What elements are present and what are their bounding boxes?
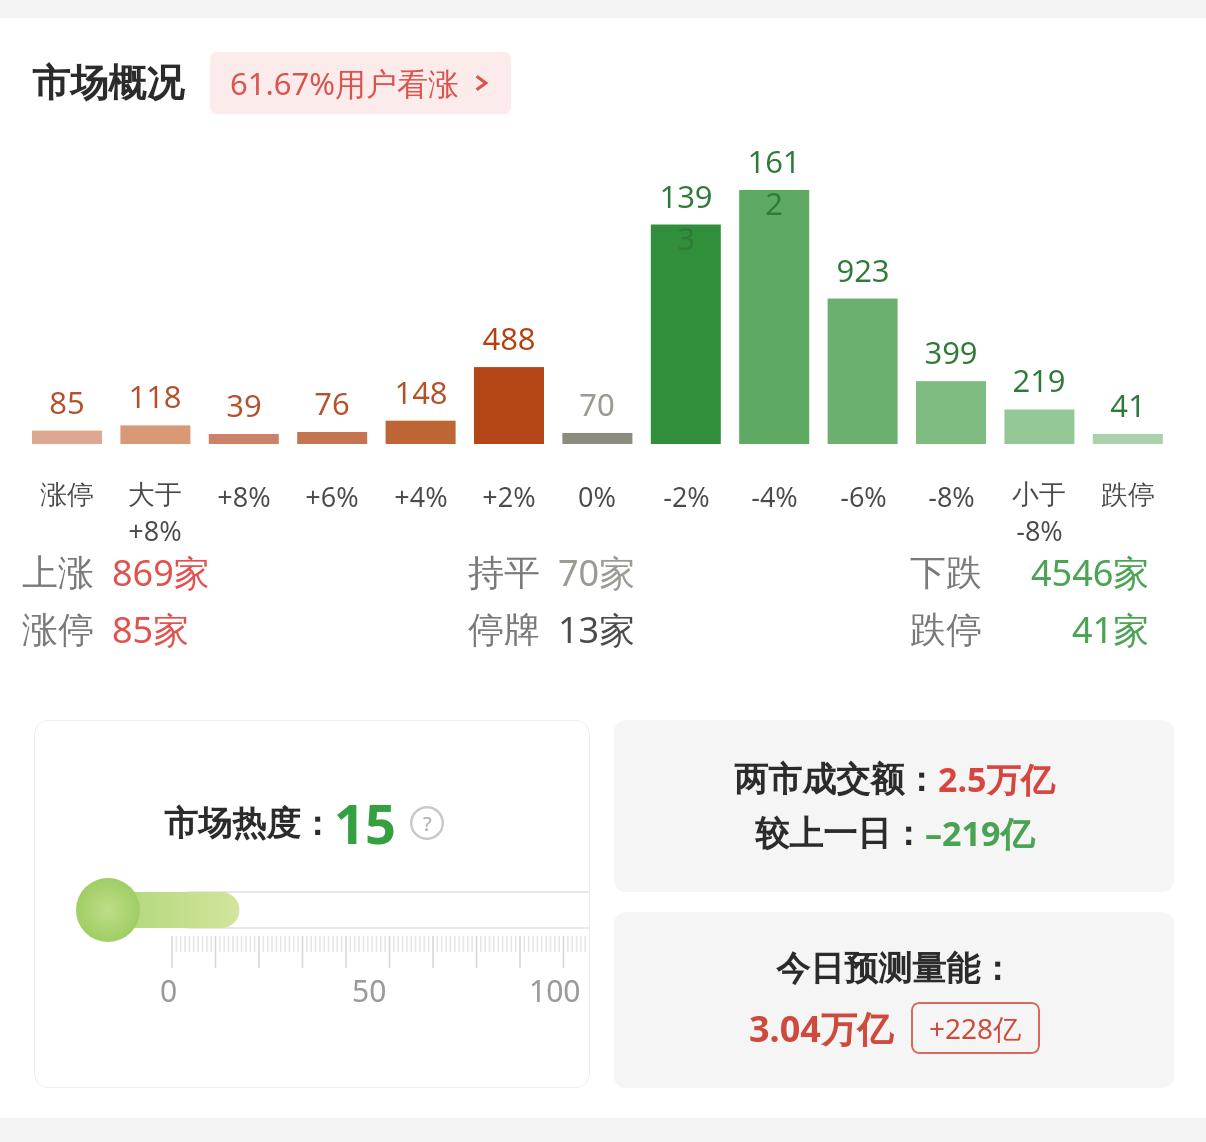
- staticText: 上涨: [22, 550, 94, 595]
- staticText: 15: [334, 786, 396, 860]
- staticText: 76: [314, 382, 350, 424]
- staticText: 市场概况: [32, 59, 184, 107]
- staticText: –219亿: [925, 810, 1035, 856]
- button[interactable]: 两市成交额：: [614, 720, 1174, 892]
- staticText: 41家: [1072, 605, 1150, 654]
- button[interactable]: 今日预测量能：: [614, 912, 1174, 1088]
- staticText: 小于: [1012, 478, 1066, 512]
- staticText: +2%: [482, 478, 536, 515]
- staticText: -8%: [928, 478, 975, 515]
- staticText: 61.67%用户看涨: [230, 62, 459, 104]
- staticText: 41: [1110, 384, 1146, 426]
- button[interactable]: 跌停: [910, 605, 1150, 654]
- button[interactable]: 61.67%用户看涨: [210, 52, 511, 114]
- button[interactable]: 帮助: [410, 806, 444, 840]
- staticText: +8%: [217, 478, 271, 515]
- staticText: 100: [529, 970, 581, 1011]
- staticText: 0: [160, 970, 178, 1011]
- staticText: +8%: [128, 512, 182, 549]
- staticText: 下跌: [910, 550, 982, 595]
- staticText: 1393: [651, 175, 721, 259]
- staticText: 停牌: [468, 607, 540, 652]
- staticText: 3.04万亿: [749, 1004, 893, 1053]
- staticText: 399: [924, 331, 978, 373]
- staticText: 148: [394, 371, 448, 413]
- staticText: 488: [482, 317, 536, 359]
- staticText: 持平: [468, 550, 540, 595]
- staticText: 大于: [128, 478, 182, 512]
- button[interactable]: 涨停: [22, 605, 190, 654]
- staticText: 70: [579, 383, 615, 425]
- staticText: +228亿: [929, 1009, 1022, 1047]
- staticText: 两市成交额：: [734, 758, 938, 801]
- staticText: 85家: [112, 605, 190, 654]
- staticText: 85: [49, 381, 85, 423]
- staticText: 2.5万亿: [938, 756, 1055, 802]
- staticText: 跌停: [910, 607, 982, 652]
- staticText: 0%: [578, 478, 616, 515]
- staticText: 118: [128, 375, 182, 417]
- button[interactable]: 下跌: [910, 548, 1150, 597]
- button[interactable]: 停牌: [468, 605, 636, 654]
- button[interactable]: 上涨: [22, 548, 210, 597]
- staticText: 13家: [558, 605, 636, 654]
- button[interactable]: 持平: [468, 548, 636, 597]
- staticText: +6%: [305, 478, 359, 515]
- staticText: 市场热度：: [164, 802, 334, 845]
- staticText: -6%: [840, 478, 887, 515]
- staticText: 较上一日：: [755, 812, 925, 855]
- staticText: 923: [836, 249, 890, 291]
- staticText: 39: [226, 384, 262, 426]
- staticText: ?: [423, 810, 432, 837]
- staticText: 869家: [112, 548, 210, 597]
- staticText: 涨停: [22, 607, 94, 652]
- staticText: 70家: [558, 548, 636, 597]
- staticText: 1612: [739, 140, 809, 224]
- staticText: 50: [352, 970, 387, 1011]
- staticText: 今日预测量能：: [776, 947, 1014, 990]
- staticText: -2%: [663, 478, 710, 515]
- staticText: 4546家: [1031, 548, 1150, 597]
- staticText: 涨停: [40, 478, 94, 512]
- staticText: +4%: [394, 478, 448, 515]
- staticText: 219: [1012, 359, 1066, 401]
- button[interactable]: 市场热度：: [34, 720, 590, 1088]
- staticText: -8%: [1016, 512, 1063, 549]
- staticText: 跌停: [1101, 478, 1155, 512]
- staticText: -4%: [751, 478, 798, 515]
